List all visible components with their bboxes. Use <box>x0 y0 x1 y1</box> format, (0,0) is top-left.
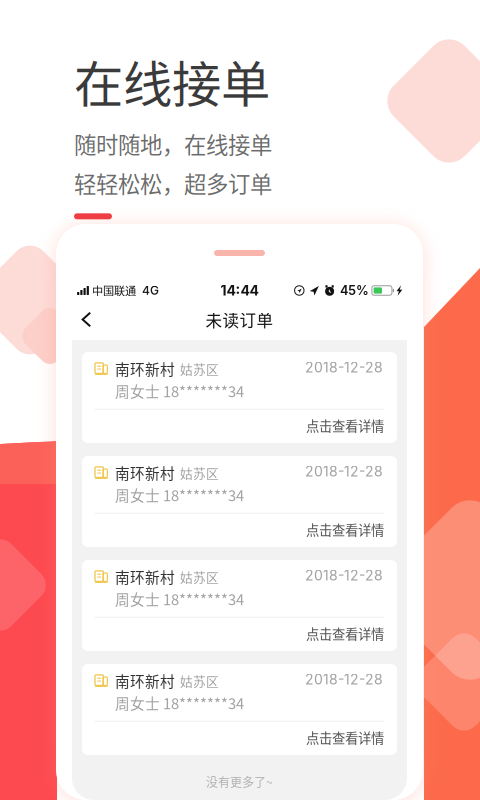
staticText: 随时随地，在线接单 <box>74 127 272 160</box>
staticText: 南环新村 <box>115 670 175 691</box>
staticText: 周女士 18*******34 <box>115 588 244 609</box>
staticText: 周女士 18*******34 <box>115 484 244 505</box>
staticText: 点击查看详情 <box>306 416 384 435</box>
staticText: 点击查看详情 <box>306 728 384 747</box>
staticText: 2018-12-28 <box>305 359 383 376</box>
staticText: 没有更多了~ <box>206 773 273 790</box>
staticText: 2018-12-28 <box>305 567 383 584</box>
staticText: 周女士 18*******34 <box>115 380 244 401</box>
staticText: 45% <box>340 283 369 298</box>
staticText: 轻轻松松，超多订单 <box>74 167 272 199</box>
button[interactable]: 南环新村 <box>82 560 397 651</box>
staticText: 南环新村 <box>115 358 175 379</box>
staticText: 未读订单 <box>205 307 273 331</box>
button[interactable]: Back <box>72 304 101 334</box>
staticText: 姑苏区 <box>180 463 219 482</box>
staticText: 姑苏区 <box>180 567 219 586</box>
staticText: 点击查看详情 <box>306 624 384 643</box>
staticText: 2018-12-28 <box>305 671 383 688</box>
staticText: 4G <box>142 283 159 298</box>
staticText: 姑苏区 <box>180 359 219 378</box>
button[interactable]: 南环新村 <box>82 352 397 443</box>
staticText: 南环新村 <box>115 462 175 483</box>
button[interactable]: 南环新村 <box>82 664 397 755</box>
staticText: 2018-12-28 <box>305 463 383 480</box>
staticText: 在线接单 <box>74 45 270 116</box>
staticText: 点击查看详情 <box>306 520 384 539</box>
staticText: 周女士 18*******34 <box>115 692 244 713</box>
staticText: 姑苏区 <box>180 671 219 690</box>
staticText: 中国联通 <box>92 282 136 299</box>
staticText: 14:44 <box>220 282 258 299</box>
button[interactable]: 南环新村 <box>82 456 397 547</box>
staticText: 南环新村 <box>115 566 175 587</box>
